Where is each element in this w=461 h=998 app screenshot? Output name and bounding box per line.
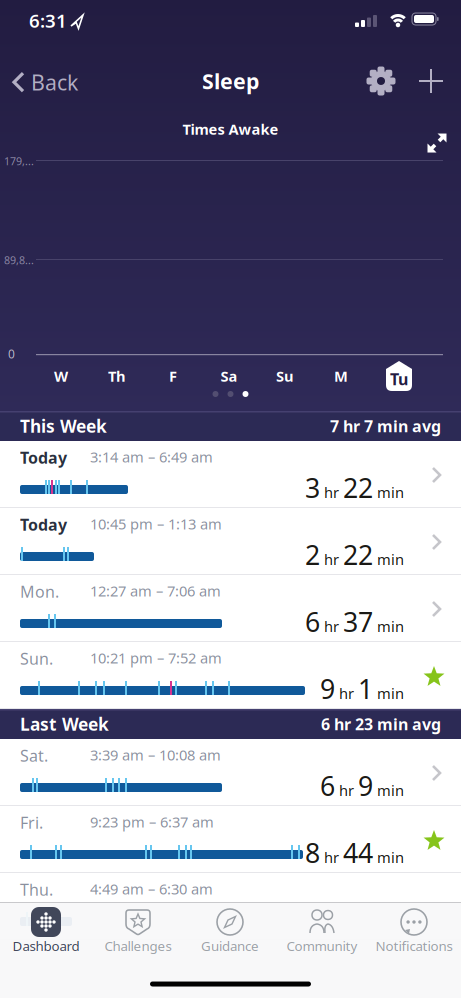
staticText: Thu. (20, 879, 53, 900)
staticText: 4:49 am – 6:30 am (90, 879, 213, 898)
staticText: 0 (8, 346, 15, 362)
button[interactable]: Challenges (92, 907, 184, 977)
staticText: Tu (390, 368, 408, 390)
staticText: M (334, 366, 348, 386)
staticText: Last Week (20, 712, 109, 735)
button[interactable]: Back (12, 68, 78, 96)
button[interactable]: Add sleep log (418, 68, 444, 94)
staticText: Sa (220, 366, 237, 386)
staticText: 6 hr 37 min (305, 604, 404, 639)
staticText: 9 hr 1 min (320, 671, 404, 706)
staticText: Fri. (20, 812, 43, 833)
button[interactable]: Fri. (0, 806, 461, 873)
button[interactable]: Notifications (368, 907, 460, 977)
button[interactable]: Thu. (0, 873, 461, 940)
staticText: Community (286, 937, 357, 955)
button[interactable]: Expand chart (427, 133, 447, 153)
staticText: Mon. (20, 581, 59, 602)
button[interactable]: Mon. (0, 575, 461, 642)
button[interactable]: Guidance (184, 907, 276, 977)
staticText: Times Awake (182, 119, 278, 139)
staticText: 3 hr 22 min (305, 470, 404, 505)
staticText: 179,... (4, 154, 34, 168)
staticText: F (169, 366, 177, 386)
staticText: Sun. (20, 648, 53, 669)
staticText: This Week (20, 414, 107, 437)
staticText: 12:27 am – 7:06 am (90, 581, 221, 600)
staticText: Challenges (104, 937, 171, 955)
staticText: 10:45 pm – 1:13 am (90, 514, 222, 533)
staticText: 6 hr 23 min avg (321, 713, 441, 735)
staticText: 2 hr 22 min (305, 537, 404, 572)
staticText: 3:14 am – 6:49 am (90, 447, 213, 466)
button[interactable]: Today (0, 508, 461, 575)
staticText: 10:21 pm – 7:52 am (90, 648, 222, 667)
staticText: 9:23 pm – 6:37 am (90, 812, 214, 831)
staticText: 3:39 am – 10:08 am (90, 745, 221, 764)
staticText: 6:31 (29, 8, 67, 33)
staticText: Today (20, 447, 67, 468)
staticText: 8 hr 44 min (305, 835, 404, 870)
button[interactable]: Dashboard (0, 907, 92, 977)
staticText: 6 hr 9 min (320, 768, 404, 803)
staticText: Today (20, 514, 67, 535)
button[interactable]: Today (0, 441, 461, 508)
staticText: Su (276, 366, 294, 386)
staticText: 7 hr 7 min avg (330, 415, 441, 437)
button[interactable]: Settings (367, 67, 395, 95)
staticText: Th (108, 366, 126, 386)
staticText: Notifications (375, 937, 452, 955)
button[interactable]: Sat. (0, 739, 461, 806)
button[interactable]: Community (276, 907, 368, 977)
staticText: 89,8... (4, 253, 34, 267)
button[interactable]: Sun. (0, 642, 461, 709)
staticText: Back (31, 68, 78, 96)
staticText: Sleep (202, 67, 259, 95)
staticText: Guidance (201, 937, 259, 955)
staticText: W (54, 366, 68, 386)
staticText: Sat. (20, 745, 48, 766)
staticText: Dashboard (12, 937, 79, 955)
